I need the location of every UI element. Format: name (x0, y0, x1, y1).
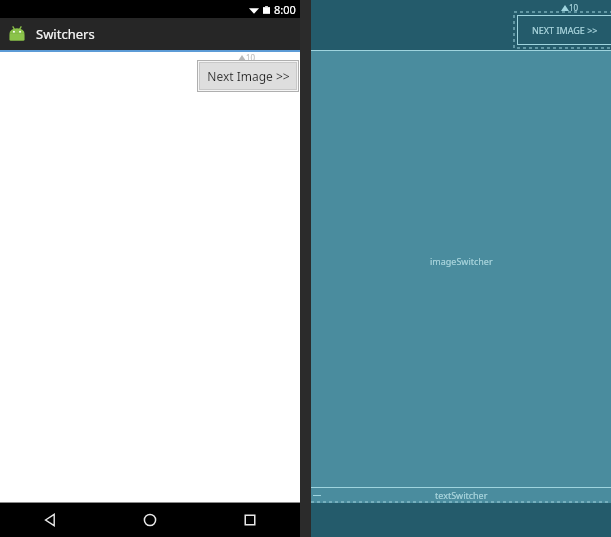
staticText: Next Image >> (207, 68, 290, 84)
button[interactable]: NEXT IMAGE >> (514, 12, 611, 48)
staticText: 8:00 (274, 2, 296, 17)
staticText: Switchers (36, 25, 95, 43)
staticText: 10 (246, 52, 256, 63)
staticText: imageSwitcher (430, 255, 493, 267)
staticText: NEXT IMAGE >> (532, 24, 598, 36)
other: App icon (8, 25, 26, 43)
button[interactable]: Recents (200, 503, 300, 537)
button[interactable]: Back (0, 503, 100, 537)
button[interactable]: Home (100, 503, 200, 537)
staticText: textSwitcher (435, 489, 488, 501)
staticText: 10 (569, 2, 579, 13)
button[interactable]: Next Image >> (199, 62, 297, 90)
